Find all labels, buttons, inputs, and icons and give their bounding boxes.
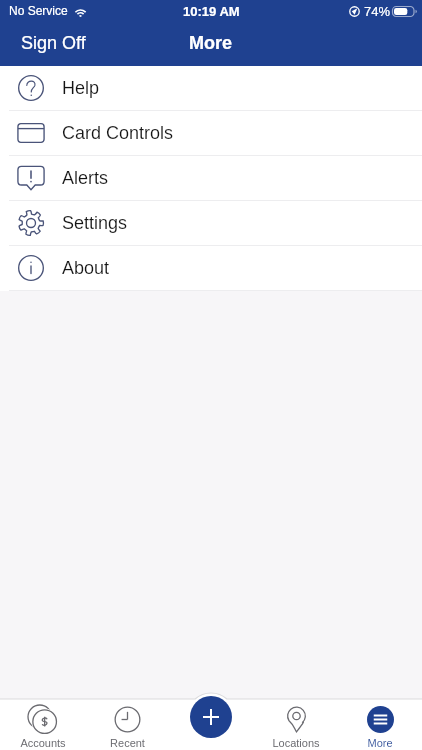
- staticText: More: [189, 33, 233, 53]
- button[interactable]: Alerts: [0, 156, 422, 201]
- staticText: Recent: [110, 737, 145, 749]
- button[interactable]: Add: [190, 696, 232, 738]
- staticText: About: [62, 258, 110, 278]
- staticText: Alerts: [62, 168, 109, 188]
- staticText: Accounts: [20, 737, 66, 749]
- button[interactable]: About: [0, 246, 422, 291]
- button[interactable]: More: [338, 700, 422, 749]
- button[interactable]: Recent: [85, 700, 170, 749]
- staticText: Help: [62, 78, 100, 98]
- button[interactable]: Help: [0, 66, 422, 111]
- staticText: 10:19 AM: [183, 4, 240, 19]
- button[interactable]: Accounts: [0, 700, 85, 749]
- staticText: Card Controls: [62, 123, 174, 143]
- staticText: More: [367, 737, 393, 749]
- button[interactable]: Locations: [254, 700, 338, 749]
- button[interactable]: Sign Off: [0, 29, 98, 59]
- staticText: 74%: [364, 4, 391, 19]
- button[interactable]: Settings: [0, 201, 422, 246]
- staticText: Locations: [272, 737, 320, 749]
- staticText: Settings: [62, 213, 128, 233]
- button[interactable]: Card Controls: [0, 111, 422, 156]
- staticText: No Service: [9, 4, 68, 17]
- staticText: Sign Off: [21, 33, 86, 53]
